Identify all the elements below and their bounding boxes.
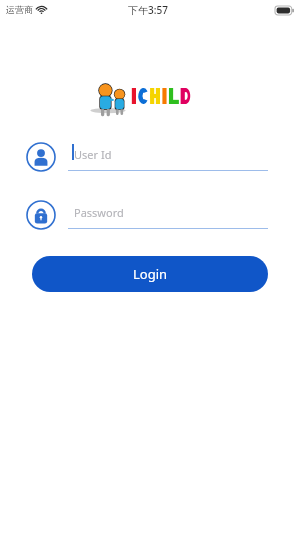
staticText: User Id [74,147,112,162]
staticText: 下午3:57 [128,3,168,17]
other: Password [26,200,56,230]
staticText: Password [74,205,124,220]
button[interactable]: Password [26,195,274,235]
other: User Id [26,142,56,172]
staticText: 运营商 [6,4,33,15]
button[interactable]: Login [32,256,268,292]
staticText: Login [133,265,168,283]
button[interactable]: User Id [26,137,274,177]
